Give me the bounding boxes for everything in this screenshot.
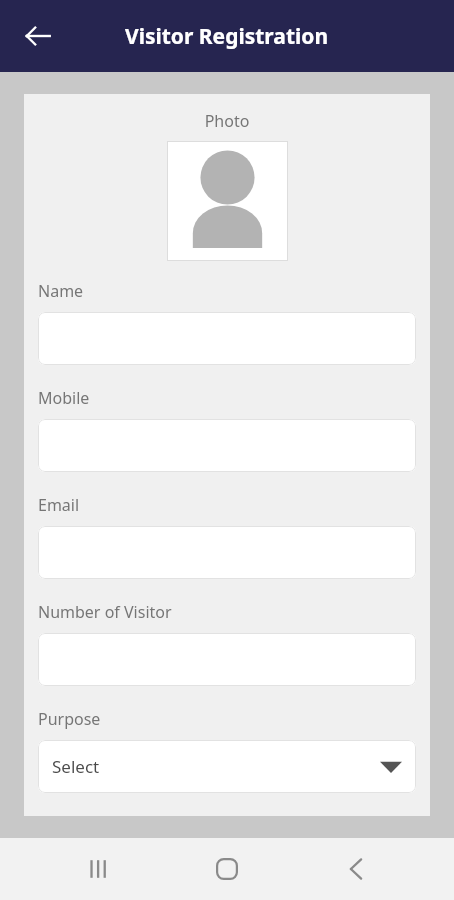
staticText: Photo — [24, 110, 430, 132]
staticText: Select — [52, 755, 380, 778]
button[interactable]: Mobile — [38, 419, 416, 472]
button[interactable]: Back — [326, 839, 386, 899]
staticText: Purpose — [38, 708, 101, 730]
staticText: Name — [38, 280, 84, 302]
button[interactable]: Select — [38, 740, 416, 793]
staticText: Number of Visitor — [38, 601, 172, 623]
button[interactable]: Number of Visitor — [38, 633, 416, 686]
button[interactable]: Home — [197, 839, 257, 899]
button[interactable]: Recent apps — [69, 839, 129, 899]
staticText: Mobile — [38, 387, 90, 409]
button[interactable]: Email — [38, 526, 416, 579]
staticText: Email — [38, 494, 80, 516]
button[interactable]: Name — [38, 312, 416, 365]
button[interactable]: Photo — [167, 141, 288, 261]
button[interactable]: Back — [14, 12, 62, 60]
staticText: Visitor Registration — [125, 22, 329, 51]
